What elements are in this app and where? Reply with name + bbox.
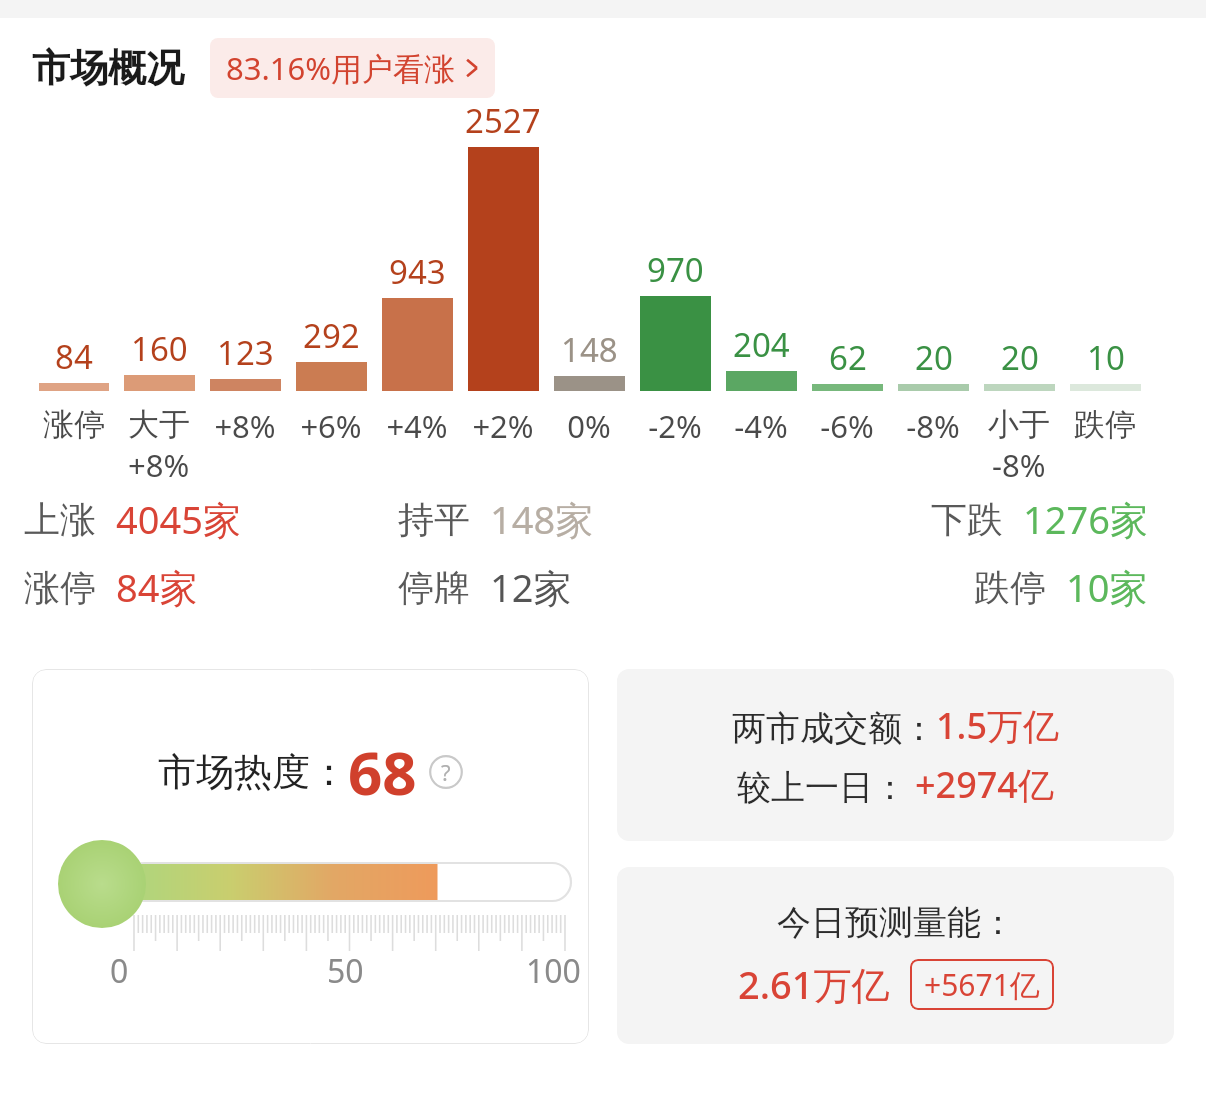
staticText: 今日预测量能：: [777, 901, 1015, 944]
button[interactable]: 市场热度：: [32, 669, 589, 1044]
staticText: 0%: [567, 405, 611, 447]
staticText: 1276家: [1023, 493, 1148, 545]
staticText: 83.16%用户看涨: [226, 47, 455, 89]
staticText: 20: [1001, 335, 1039, 380]
staticText: -8%: [992, 444, 1046, 483]
staticText: +8%: [128, 444, 190, 483]
staticText: +2%: [472, 405, 534, 447]
staticText: -4%: [734, 405, 788, 447]
staticText: 100: [526, 949, 581, 993]
staticText: 上涨: [24, 497, 96, 542]
staticText: 62: [829, 335, 867, 380]
staticText: 小于: [988, 405, 1050, 444]
staticText: 148家: [490, 493, 594, 545]
staticText: 涨停: [24, 565, 96, 610]
staticText: 160: [131, 326, 188, 371]
staticText: +4%: [386, 405, 448, 447]
button[interactable]: 两市成交额：: [617, 669, 1174, 841]
staticText: 148: [561, 327, 618, 372]
staticText: 4045家: [116, 493, 241, 545]
staticText: 大于: [128, 405, 190, 444]
staticText: +8%: [214, 405, 276, 447]
staticText: 292: [303, 313, 360, 358]
staticText: 市场热度：: [158, 748, 348, 796]
staticText: +6%: [300, 405, 362, 447]
staticText: ?: [441, 757, 451, 787]
staticText: 较上一日：: [737, 766, 907, 809]
staticText: +2974亿: [915, 760, 1054, 809]
staticText: -8%: [906, 405, 960, 447]
staticText: -6%: [820, 405, 874, 447]
button[interactable]: 今日预测量能：: [617, 867, 1174, 1044]
staticText: 84: [55, 334, 93, 379]
staticText: 123: [217, 330, 274, 375]
staticText: 970: [647, 247, 704, 292]
staticText: 跌停: [1074, 405, 1136, 444]
staticText: +5671亿: [924, 964, 1040, 1005]
staticText: 2.61万亿: [738, 958, 890, 1010]
staticText: 2527: [465, 98, 541, 143]
staticText: 20: [915, 335, 953, 380]
staticText: 1.5万亿: [936, 701, 1059, 750]
staticText: 跌停: [974, 565, 1046, 610]
staticText: 持平: [398, 497, 470, 542]
staticText: 943: [389, 249, 446, 294]
staticText: 50: [327, 949, 364, 993]
staticText: 0: [110, 949, 129, 993]
staticText: 204: [733, 322, 790, 367]
staticText: 市场概况: [32, 44, 184, 92]
staticText: 12家: [490, 561, 572, 613]
staticText: 两市成交额：: [732, 707, 936, 750]
staticText: 停牌: [398, 565, 470, 610]
staticText: 涨停: [43, 405, 105, 444]
button[interactable]: 帮助说明: [429, 755, 463, 789]
staticText: 10: [1087, 335, 1125, 380]
staticText: 10家: [1066, 561, 1148, 613]
button[interactable]: 83.16%用户看涨: [210, 38, 495, 98]
staticText: -2%: [648, 405, 702, 447]
staticText: 68: [348, 731, 417, 813]
staticText: 84家: [116, 561, 198, 613]
staticText: 下跌: [931, 497, 1003, 542]
